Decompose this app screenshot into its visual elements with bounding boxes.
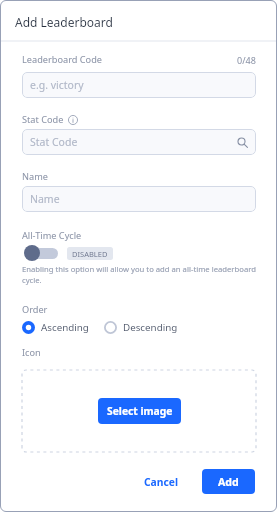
staticText: Descending <box>123 321 178 334</box>
staticText: All-Time Cycle <box>22 229 82 242</box>
staticText: Leaderboard Code <box>22 53 102 66</box>
button[interactable]: Stat Code <box>22 129 256 155</box>
other: Search stat code <box>237 137 248 148</box>
staticText: Enabling this option will allow you to a… <box>22 264 256 286</box>
button[interactable]: Descending <box>104 321 178 334</box>
button[interactable]: Cancel <box>134 469 189 494</box>
button[interactable]: Ascending <box>22 321 89 334</box>
staticText: e.g. victory <box>30 78 84 92</box>
staticText: Ascending <box>41 321 89 334</box>
staticText: Stat Code <box>22 113 64 126</box>
staticText: DISABLED <box>72 249 108 259</box>
staticText: Cancel <box>144 475 179 489</box>
staticText: Order <box>22 303 48 316</box>
button[interactable]: All-Time Cycle toggle, disabled <box>22 245 58 261</box>
staticText: Add <box>218 475 239 489</box>
button[interactable]: Name <box>22 186 256 212</box>
staticText: Stat Code <box>30 135 78 149</box>
staticText: 0/48 <box>237 54 256 66</box>
button[interactable]: Select image <box>98 398 181 424</box>
staticText: Icon <box>22 346 41 359</box>
staticText: Name <box>30 192 60 206</box>
button[interactable]: Add <box>202 469 255 494</box>
staticText: Add Leaderboard <box>15 14 113 30</box>
staticText: Name <box>22 170 48 183</box>
staticText: Select image <box>107 404 173 418</box>
button[interactable]: e.g. victory <box>22 72 256 98</box>
